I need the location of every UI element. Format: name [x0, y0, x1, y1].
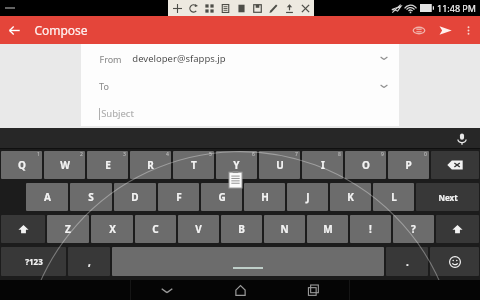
button[interactable]: D — [114, 183, 156, 211]
staticText: 9 — [381, 151, 384, 158]
button[interactable]: G — [201, 183, 242, 211]
button[interactable]: From — [81, 44, 399, 72]
button[interactable]: R — [130, 151, 171, 179]
staticText: G — [218, 190, 226, 204]
staticText: 3 — [123, 151, 126, 158]
button[interactable]: L — [373, 183, 414, 211]
button[interactable]: Z — [47, 215, 89, 243]
button[interactable]: P — [388, 151, 429, 179]
staticText: 4 — [166, 151, 169, 158]
button[interactable]: Rotate — [186, 1, 200, 15]
button[interactable]: Back — [130, 280, 204, 300]
button[interactable]: Y — [216, 151, 257, 179]
button[interactable]: Home — [204, 280, 277, 300]
button[interactable]: , — [68, 247, 110, 276]
button[interactable]: Shift — [1, 215, 45, 243]
button[interactable]: Move — [170, 1, 184, 15]
staticText: ! — [369, 222, 372, 236]
button[interactable]: Draw — [266, 1, 280, 15]
staticText: Compose — [34, 22, 88, 38]
button[interactable]: Close — [298, 1, 312, 15]
staticText: 6 — [252, 151, 255, 158]
button[interactable]: O — [345, 151, 386, 179]
staticText: . — [406, 255, 409, 269]
button[interactable]: A — [26, 183, 68, 211]
staticText: J — [306, 190, 310, 204]
staticText: B — [238, 222, 245, 236]
button[interactable]: Upload — [282, 1, 296, 15]
staticText: S — [88, 190, 94, 204]
button[interactable]: U — [259, 151, 300, 179]
button[interactable]: S — [70, 183, 112, 211]
button[interactable]: Voice input — [453, 130, 471, 148]
button[interactable]: ?123 — [1, 247, 66, 276]
staticText: I — [321, 158, 325, 172]
button[interactable]: . — [386, 247, 428, 276]
staticText: D — [131, 190, 139, 204]
button[interactable]: B — [221, 215, 262, 243]
button[interactable]: ! — [350, 215, 391, 243]
button[interactable]: Subject — [81, 100, 399, 126]
button[interactable]: Navigate up — [0, 16, 28, 44]
button[interactable]: M — [307, 215, 348, 243]
button[interactable]: Grid — [202, 1, 216, 15]
staticText: N — [280, 222, 289, 236]
staticText: X — [109, 222, 116, 236]
button[interactable]: T — [173, 151, 214, 179]
staticText: 0 — [424, 151, 427, 158]
button[interactable]: H — [244, 183, 285, 211]
staticText: R — [147, 158, 154, 172]
staticText: P — [405, 158, 412, 172]
staticText: K — [347, 190, 354, 204]
staticText: 1 — [37, 151, 40, 158]
staticText: To — [99, 80, 109, 92]
staticText: M — [323, 222, 333, 236]
staticText: A — [44, 190, 51, 204]
staticText: Subject — [101, 107, 134, 120]
button[interactable]: I — [302, 151, 343, 179]
button[interactable]: V — [178, 215, 219, 243]
button[interactable]: Next — [416, 183, 479, 211]
staticText: O — [362, 158, 370, 172]
button[interactable]: ? — [393, 215, 434, 243]
button[interactable]: Delete — [431, 151, 479, 179]
staticText: 11:48 PM — [437, 2, 476, 14]
button[interactable]: N — [264, 215, 305, 243]
button[interactable]: Shift — [436, 215, 479, 243]
button[interactable]: X — [91, 215, 133, 243]
staticText: ?123 — [25, 256, 43, 267]
staticText: E — [105, 158, 111, 172]
button[interactable]: W — [44, 151, 85, 179]
button[interactable]: C — [135, 215, 176, 243]
button[interactable]: Q — [1, 151, 42, 179]
button[interactable]: Attach file — [406, 17, 432, 43]
staticText: F — [176, 190, 182, 204]
staticText: 8 — [338, 151, 341, 158]
button[interactable]: Send — [432, 17, 458, 43]
button[interactable]: K — [330, 183, 371, 211]
staticText: L — [391, 190, 397, 204]
staticText: Q — [18, 158, 26, 172]
button[interactable]: More options — [458, 20, 478, 40]
staticText: V — [195, 222, 202, 236]
button[interactable]: To — [81, 72, 399, 100]
button[interactable]: Notes — [218, 1, 232, 15]
button[interactable]: Save — [250, 1, 264, 15]
button[interactable]: Page — [234, 1, 248, 15]
staticText: 2 — [80, 151, 83, 158]
staticText: H — [261, 190, 269, 204]
button[interactable]: Space — [112, 247, 384, 276]
staticText: , — [88, 255, 91, 269]
button[interactable]: E — [87, 151, 128, 179]
staticText: developer@sfapps.jp — [132, 52, 226, 65]
staticText: Next — [438, 192, 458, 203]
button[interactable]: F — [158, 183, 199, 211]
staticText: 5 — [209, 151, 212, 158]
staticText: T — [191, 158, 197, 172]
staticText: W — [60, 158, 70, 172]
button[interactable]: Recent apps — [277, 280, 350, 300]
staticText: From — [99, 53, 122, 65]
button[interactable]: Emoji — [430, 247, 479, 276]
staticText: Y — [233, 158, 240, 172]
button[interactable]: J — [287, 183, 328, 211]
